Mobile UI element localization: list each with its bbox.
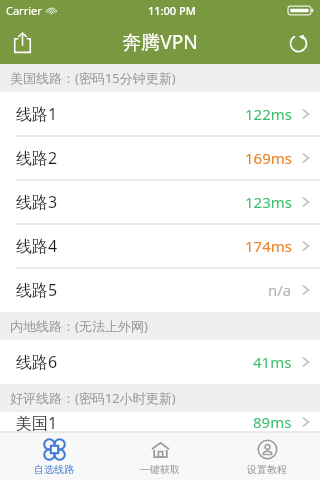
button[interactable]: 线路3 bbox=[0, 180, 320, 224]
staticText: 41ms bbox=[253, 352, 292, 372]
button[interactable]: 线路1 bbox=[0, 92, 320, 136]
staticText: 89ms bbox=[253, 412, 292, 432]
staticText: 线路2 bbox=[16, 147, 58, 169]
button[interactable]: 线路5 bbox=[0, 268, 320, 312]
button[interactable]: 美国1 bbox=[0, 412, 320, 432]
staticText: 线路6 bbox=[16, 351, 58, 373]
staticText: 奔腾VPN bbox=[122, 29, 198, 55]
staticText: 线路3 bbox=[16, 191, 58, 213]
staticText: Carrier bbox=[6, 3, 42, 18]
button[interactable]: 线路2 bbox=[0, 136, 320, 180]
staticText: 美国线路：(密码15分钟更新) bbox=[10, 69, 176, 87]
staticText: 自选线路 bbox=[34, 463, 74, 476]
button[interactable]: 线路6 bbox=[0, 340, 320, 384]
button[interactable]: 一键获取 bbox=[107, 433, 213, 480]
staticText: 174ms bbox=[245, 236, 292, 256]
button[interactable]: 自选线路 bbox=[1, 433, 107, 480]
staticText: 内地线路：(无法上外网) bbox=[10, 317, 148, 335]
staticText: 设置教程 bbox=[247, 463, 287, 476]
staticText: 线路1 bbox=[16, 103, 58, 125]
button[interactable]: Share bbox=[0, 20, 44, 64]
button[interactable]: Refresh bbox=[276, 20, 320, 64]
staticText: n/a bbox=[268, 280, 292, 300]
staticText: 11:00 PM bbox=[148, 3, 196, 18]
staticText: 123ms bbox=[245, 192, 292, 212]
button[interactable]: 线路4 bbox=[0, 224, 320, 268]
staticText: 线路5 bbox=[16, 279, 58, 301]
staticText: 线路4 bbox=[16, 235, 58, 257]
staticText: 122ms bbox=[245, 104, 292, 124]
staticText: 169ms bbox=[245, 148, 292, 168]
staticText: 美国1 bbox=[16, 412, 58, 432]
staticText: 好评线路：(密码12小时更新) bbox=[10, 389, 176, 407]
button[interactable]: 设置教程 bbox=[214, 433, 320, 480]
staticText: 一键获取 bbox=[140, 463, 180, 476]
